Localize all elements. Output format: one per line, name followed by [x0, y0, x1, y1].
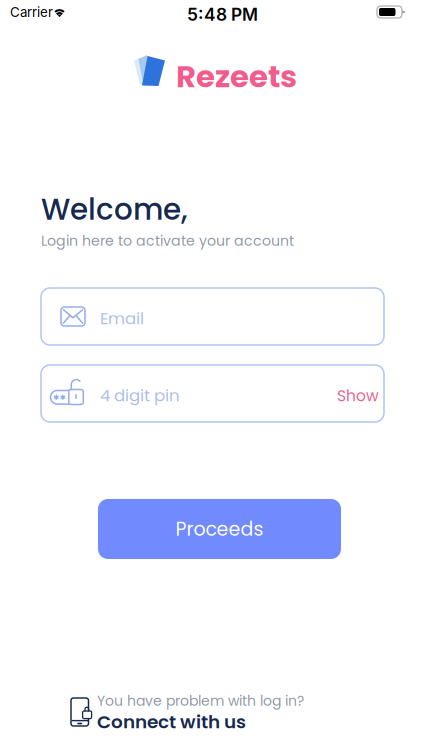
- staticText: Rezeets: [176, 55, 297, 98]
- button[interactable]: You have problem with log in?: [71, 691, 341, 733]
- staticText: Login here to activate your account: [41, 231, 294, 251]
- staticText: Welcome,: [41, 189, 188, 230]
- button[interactable]: 4 digit pin: [41, 365, 384, 422]
- button[interactable]: Proceeds: [98, 499, 341, 559]
- staticText: 5:48 PM: [187, 4, 258, 25]
- staticText: 4 digit pin: [100, 384, 180, 407]
- button[interactable]: Email: [41, 288, 384, 345]
- staticText: Email: [100, 307, 144, 330]
- staticText: Proceeds: [175, 516, 263, 542]
- staticText: Show: [337, 385, 379, 407]
- staticText: You have problem with log in?: [97, 691, 304, 711]
- staticText: Carrier: [10, 4, 53, 20]
- staticText: Connect with us: [97, 709, 246, 735]
